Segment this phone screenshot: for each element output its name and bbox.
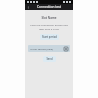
staticText: Start period bbox=[42, 35, 57, 39]
button[interactable]: Send bbox=[43, 56, 56, 62]
staticText: wait until it is set bbox=[39, 27, 59, 30]
staticText: Send bbox=[46, 57, 53, 61]
staticText: Push the connection button and bbox=[30, 23, 68, 26]
button[interactable]: Start period bbox=[40, 34, 59, 40]
staticText: Connection test bbox=[37, 5, 62, 9]
button[interactable]: Alarm setting (help) bbox=[28, 45, 70, 52]
staticText: Slot Name bbox=[25, 16, 73, 20]
button[interactable]: Info bbox=[63, 46, 68, 51]
staticText: Alarm setting (help) bbox=[30, 47, 63, 50]
button[interactable]: Back bbox=[25, 4, 31, 10]
